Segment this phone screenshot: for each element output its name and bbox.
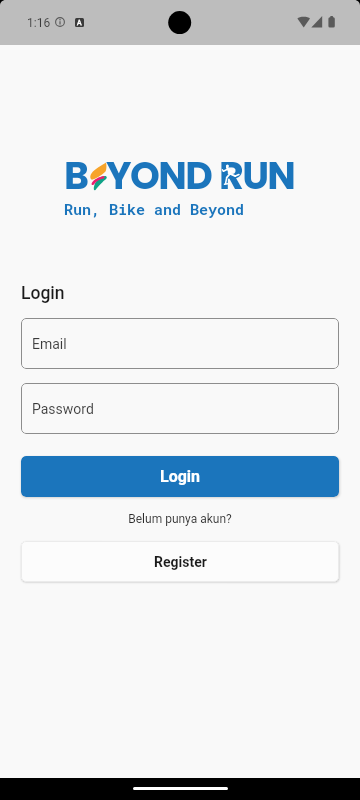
staticText: Login — [21, 283, 65, 304]
button[interactable]: Register — [21, 541, 339, 582]
staticText: Register — [154, 554, 207, 570]
staticText: RUN — [219, 149, 295, 202]
staticText: 1:16 — [27, 16, 51, 30]
button[interactable]: Email — [21, 318, 339, 369]
staticText: YOND — [106, 149, 212, 202]
button[interactable]: Login — [21, 456, 339, 497]
staticText: Belum punya akun? — [21, 512, 339, 526]
button[interactable]: Password — [21, 383, 339, 434]
staticText: Login — [160, 467, 201, 486]
staticText: Run, Bike and Beyond — [64, 199, 245, 219]
staticText: B — [64, 149, 88, 202]
staticText: A — [77, 19, 82, 27]
staticText: Password — [32, 401, 94, 417]
staticText: Email — [32, 336, 67, 352]
